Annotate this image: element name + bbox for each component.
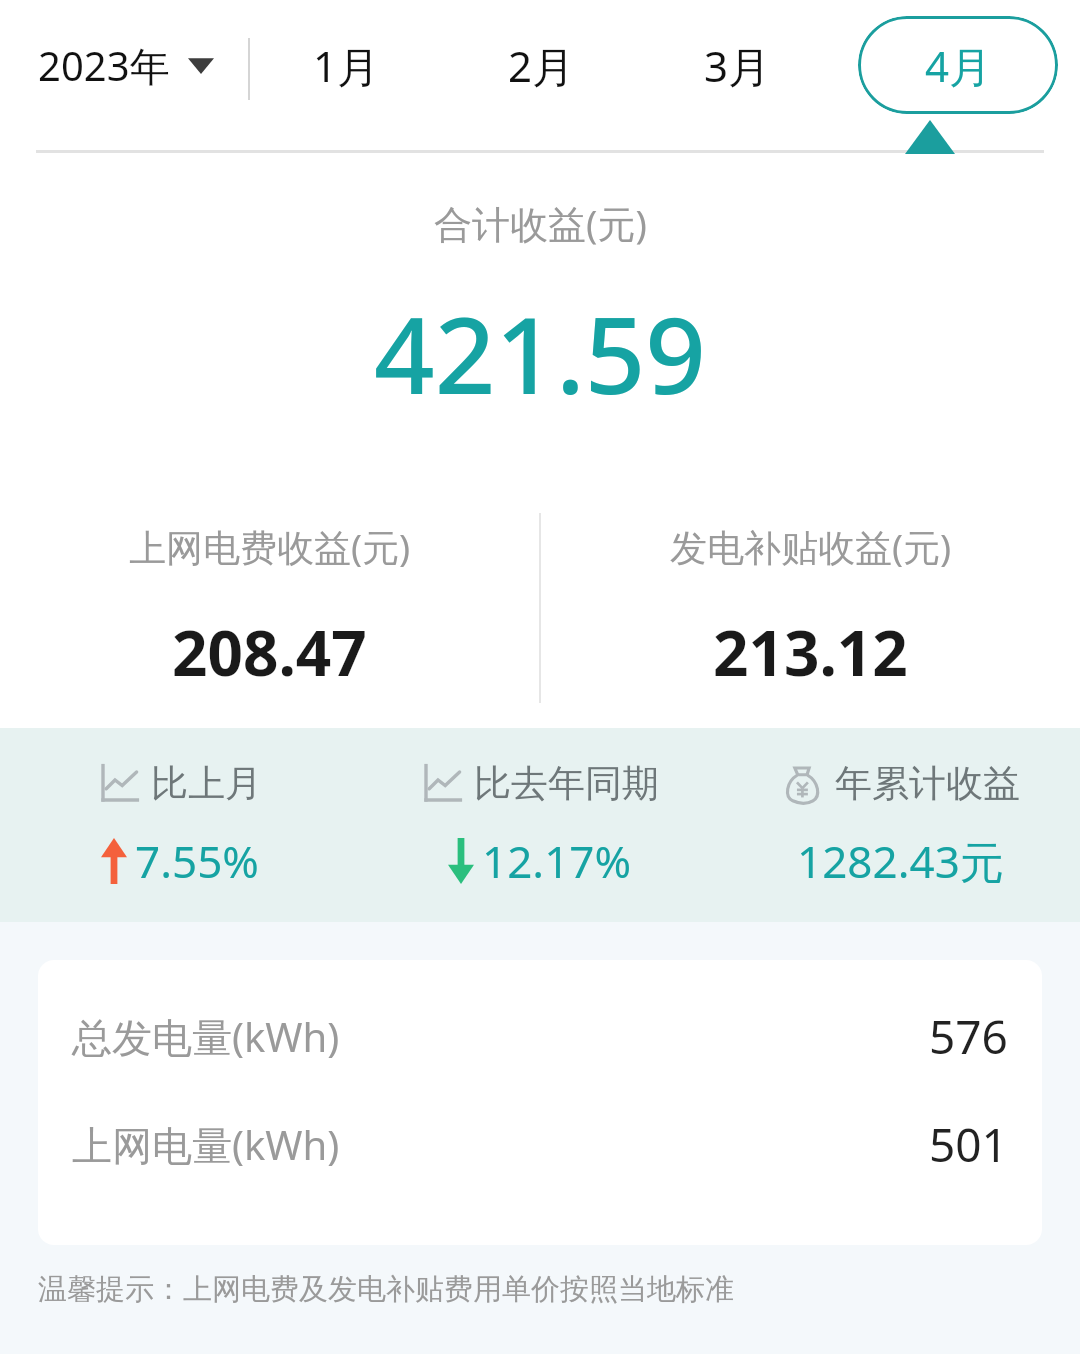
button[interactable]: 2月 <box>461 16 621 114</box>
staticText: 温馨提示：上网电费及发电补贴费用单价按照当地标准 <box>38 1271 734 1308</box>
staticText: 年累计收益 <box>835 760 1020 807</box>
staticText: 3月 <box>704 37 771 94</box>
staticText: 上网电量(kWh) <box>72 1117 340 1172</box>
button[interactable]: 4月 <box>858 16 1058 114</box>
staticText: 421.59 <box>374 281 706 425</box>
staticText: 上网电费收益(元) <box>129 521 411 572</box>
button[interactable]: 上网电量(kWh) <box>38 1108 1042 1180</box>
staticText: 4月 <box>925 37 992 94</box>
staticText: 12.17% <box>482 831 632 891</box>
staticText: 发电补贴收益(元) <box>670 521 952 572</box>
staticText: 213.12 <box>713 610 908 694</box>
button[interactable]: 1月 <box>266 16 426 114</box>
staticText: 比上月 <box>151 760 262 807</box>
staticText: 2月 <box>508 37 575 94</box>
staticText: 合计收益(元) <box>434 197 647 249</box>
staticText: 1月 <box>313 37 380 94</box>
other: Trend chart <box>422 764 462 804</box>
button[interactable]: 上网电费收益(元) <box>0 513 539 713</box>
other: Select year <box>188 56 214 74</box>
staticText: 7.55% <box>135 831 259 891</box>
button[interactable]: Trend chart <box>0 728 360 922</box>
button[interactable]: Cumulative earnings <box>720 728 1080 922</box>
button[interactable]: 3月 <box>657 16 817 114</box>
other: Cumulative earnings <box>781 763 823 805</box>
staticText: 208.47 <box>172 610 367 694</box>
staticText: 501 <box>929 1113 1008 1176</box>
other: Trend chart <box>99 764 139 804</box>
button[interactable]: 总发电量(kWh) <box>38 1000 1042 1072</box>
staticText: 总发电量(kWh) <box>72 1009 340 1064</box>
staticText: 比去年同期 <box>474 760 659 807</box>
button[interactable]: Trend chart <box>360 728 720 922</box>
staticText: 2023年 <box>38 38 170 93</box>
button[interactable]: 2023年 <box>0 0 234 130</box>
staticText: 576 <box>929 1005 1008 1068</box>
button[interactable]: 发电补贴收益(元) <box>541 513 1080 713</box>
staticText: 1282.43元 <box>797 831 1004 891</box>
